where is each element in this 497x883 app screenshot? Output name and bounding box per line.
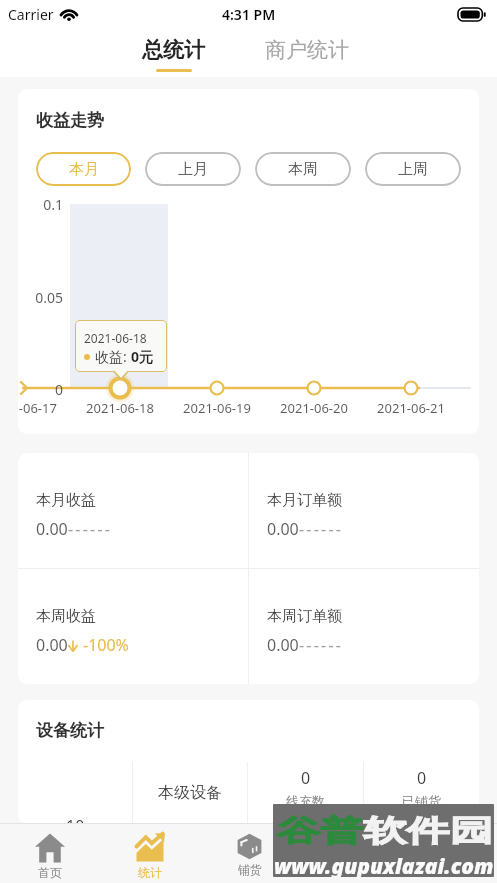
staticText: 2021-06-19 <box>181 399 253 417</box>
staticText: 本级设备 <box>158 783 222 803</box>
staticText: 0.00 <box>36 634 68 656</box>
button[interactable]: 10 <box>18 762 132 824</box>
staticText: ------ <box>68 518 113 540</box>
button[interactable]: 上周 <box>365 152 461 186</box>
button[interactable]: 总统计 <box>125 28 221 77</box>
staticText: 0 <box>18 380 63 399</box>
button[interactable]: 本级设备 <box>133 762 247 824</box>
staticText: 总统计 <box>142 37 205 63</box>
button[interactable]: 本月 <box>36 152 131 186</box>
button[interactable]: 统计 <box>100 824 200 883</box>
staticText: 0.00 <box>36 518 68 540</box>
staticText: 2021-06-18 <box>84 330 147 346</box>
staticText: ------ <box>299 634 344 656</box>
staticText: 本周收益 <box>36 607 96 626</box>
button[interactable]: 0 <box>364 762 479 824</box>
staticText: www.gupuxlazai.com <box>274 852 494 877</box>
staticText: 4:31 PM <box>222 5 276 24</box>
button[interactable]: 本周收益 <box>18 569 248 684</box>
button[interactable]: 我的 <box>398 824 497 883</box>
staticText: 设备统计 <box>36 720 104 741</box>
button[interactable]: 铺货 <box>200 824 299 883</box>
staticText: 本月订单额 <box>267 491 342 510</box>
staticText: 上周 <box>398 160 428 179</box>
staticText: 0.00 <box>267 518 299 540</box>
staticText: 2021-06-20 <box>278 399 350 417</box>
button[interactable]: 本月订单额 <box>249 453 479 568</box>
staticText: 首页 <box>38 865 62 880</box>
staticText: 收益走势 <box>36 110 104 131</box>
staticText: 本周订单额 <box>267 607 342 626</box>
staticText: 0 <box>301 767 311 789</box>
staticText: 10 <box>66 815 85 824</box>
staticText: 已铺货 <box>402 793 441 809</box>
staticText: 收益: <box>95 347 131 366</box>
staticText: 0.05 <box>18 288 63 307</box>
staticText: 统计 <box>138 865 162 880</box>
staticText: 2021-06-18 <box>84 399 156 417</box>
staticText: 2021-06-21 <box>375 399 447 417</box>
button[interactable]: 0 <box>248 762 363 824</box>
button[interactable]: 商户统计 <box>257 28 357 77</box>
button[interactable]: 本周订单额 <box>249 569 479 684</box>
staticText: 订单 <box>337 862 361 877</box>
staticText: Carrier <box>8 5 54 24</box>
staticText: 本周 <box>288 160 318 179</box>
staticText: 线充数 <box>286 793 325 809</box>
staticText: 本月收益 <box>36 491 96 510</box>
staticText: -100% <box>83 634 129 656</box>
button[interactable]: 首页 <box>0 824 100 883</box>
button[interactable]: 订单 <box>299 824 398 883</box>
staticText: 0.1 <box>18 195 63 214</box>
staticText: 2021-06-17 <box>18 399 59 417</box>
staticText: 0.00 <box>267 634 299 656</box>
staticText: 商户统计 <box>265 37 349 63</box>
staticText: ------ <box>299 518 344 540</box>
staticText: 铺货 <box>238 862 262 877</box>
button[interactable]: 本月收益 <box>18 453 248 568</box>
staticText: 0元 <box>131 347 154 366</box>
staticText: 0 <box>417 767 427 789</box>
staticText: 上月 <box>178 160 208 179</box>
button[interactable]: 本周 <box>255 152 351 186</box>
button[interactable]: 上月 <box>145 152 241 186</box>
staticText: 我的 <box>436 862 460 877</box>
staticText: 谷普 <box>277 813 363 850</box>
staticText: 本月 <box>69 160 99 179</box>
staticText: 软件园 <box>363 813 493 850</box>
